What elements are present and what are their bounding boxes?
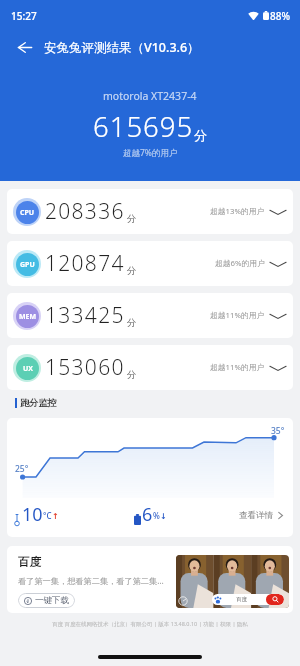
button[interactable]: 一键下载 [24,593,69,608]
staticText: 133425 [45,301,125,330]
staticText: 百度 [18,555,41,569]
staticText: 百度 [236,596,247,603]
staticText: 查看详情 [239,510,273,521]
staticText: 153060 [45,353,125,382]
staticText: 120874 [45,249,125,278]
staticText: 超越13%的用户 [210,206,265,217]
staticText: 分 [194,127,207,143]
staticText: MEM [19,312,37,322]
staticText: 一键下载 [35,595,69,606]
staticText: 10 [22,502,43,527]
staticText: 分 [127,369,137,381]
button[interactable]: Back [11,34,37,60]
button[interactable]: 查看详情 [239,510,286,521]
button[interactable]: UX [7,345,293,390]
staticText: 6 [142,502,153,527]
staticText: °C [43,510,52,521]
staticText: 分 [127,213,137,225]
staticText: 超越7%的用户 [123,147,178,159]
staticText: 35° [271,425,285,437]
staticText: 看了第一集，想看第二集，看了第二集… [18,575,164,586]
staticText: 超越6%的用户 [215,258,265,269]
staticText: 百度 百度在线网络技术（北京）有限公司 | 版本 13.48.0.10 | 功能… [52,620,248,628]
staticText: 分 [127,265,137,277]
staticText: 208336 [45,197,125,226]
staticText: 超越11%的用户 [210,362,265,373]
button[interactable]: MEM [7,293,293,338]
staticText: 跑分监控 [20,397,57,409]
staticText: 超越11%的用户 [210,310,265,321]
staticText: GPU [20,260,35,270]
staticText: 25° [15,463,29,475]
button[interactable]: GPU [7,241,293,286]
button[interactable]: 百度 [7,546,293,613]
staticText: 88% [270,9,290,23]
button[interactable]: CPU [7,189,293,234]
staticText: ↑ [52,512,59,521]
staticText: motorola XT2437-4 [103,89,197,103]
button[interactable]: Search [212,594,284,605]
staticText: 15:27 [11,9,37,23]
staticText: CPU [20,208,35,218]
staticText: ↓ [160,512,167,521]
staticText: 安兔兔评测结果（V10.3.6） [44,39,200,56]
staticText: 分 [127,317,137,329]
staticText: UX [23,364,33,374]
staticText: 615695 [93,108,194,145]
staticText: % [153,510,160,521]
